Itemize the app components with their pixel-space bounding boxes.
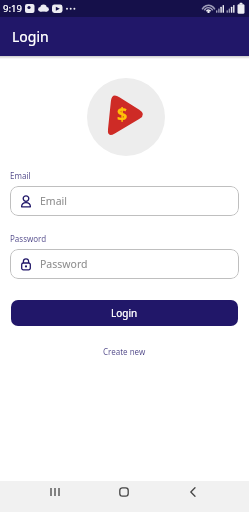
staticText: $ (117, 102, 128, 127)
button[interactable]: Login (11, 300, 238, 326)
button[interactable]: Password (10, 249, 239, 279)
staticText: Create new (103, 346, 146, 357)
staticText: Email (10, 170, 31, 181)
staticText: Login (111, 306, 138, 320)
button[interactable]: Create new (103, 346, 146, 357)
staticText: Password (10, 233, 47, 244)
button[interactable]: Email (10, 186, 239, 216)
button[interactable] (104, 481, 144, 512)
staticText: 9:19 (3, 2, 22, 15)
button[interactable] (173, 481, 213, 512)
staticText: Email (40, 194, 67, 208)
button[interactable] (35, 481, 75, 512)
staticText: Login (12, 27, 49, 46)
staticText: Password (40, 257, 88, 271)
